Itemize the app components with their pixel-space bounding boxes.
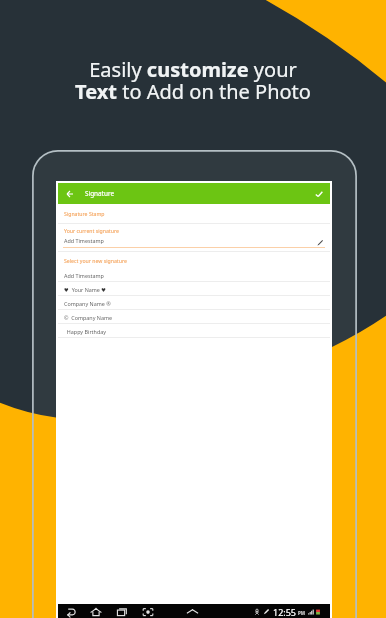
button[interactable]: © Company Name <box>58 310 330 323</box>
staticText: Add Timestamp <box>64 272 104 279</box>
staticText: PM <box>298 610 306 616</box>
staticText: Your current signature <box>64 227 119 234</box>
button[interactable]: Back <box>63 187 77 201</box>
button[interactable]: ♥ Your Name ♥ <box>58 282 330 295</box>
staticText: Select your new signature <box>64 257 127 264</box>
staticText: 12:55 <box>273 606 297 618</box>
button[interactable]: Done <box>312 187 326 201</box>
button[interactable]: Back <box>64 604 78 618</box>
staticText: Easily customize your Text to Add on the… <box>75 56 311 105</box>
staticText: Happy Birthday <box>64 328 106 335</box>
button[interactable]: Add Timestamp <box>58 268 330 281</box>
button[interactable]: Screenshot <box>141 604 155 618</box>
button[interactable]: Happy Birthday <box>58 324 330 337</box>
other: Edit <box>317 239 324 246</box>
button[interactable]: Add Timestamp <box>58 237 330 247</box>
staticText: Company Name ® <box>64 300 111 307</box>
staticText: Signature <box>85 189 114 198</box>
button[interactable]: Hide keyboard <box>185 604 199 618</box>
staticText: ♥ Your Name ♥ <box>64 286 107 293</box>
button[interactable]: Company Name ® <box>58 296 330 309</box>
staticText: Add Timestamp <box>64 237 104 244</box>
button[interactable]: Recent apps <box>115 604 129 618</box>
staticText: © Company Name <box>64 314 113 321</box>
button[interactable]: Home <box>89 604 103 618</box>
staticText: Signature Stamp <box>64 210 105 217</box>
